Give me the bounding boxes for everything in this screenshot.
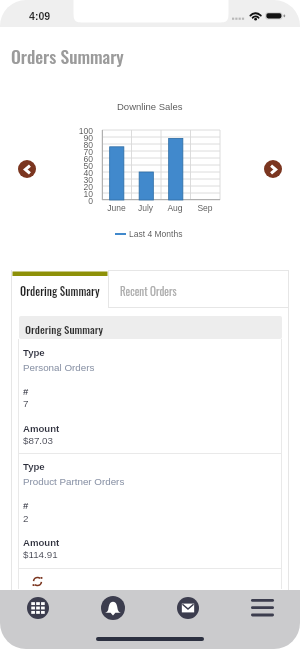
staticText: 50 <box>83 161 93 171</box>
staticText: Last 4 Months <box>129 229 183 238</box>
staticText: 80 <box>83 140 93 150</box>
staticText: Amount <box>23 537 60 548</box>
staticText: Type <box>23 347 45 358</box>
staticText: Amount <box>23 423 60 434</box>
button[interactable]: Menu <box>225 590 300 626</box>
staticText: Aug <box>160 203 190 212</box>
button[interactable]: Notifications <box>75 590 150 626</box>
staticText: Personal Orders <box>23 362 95 373</box>
staticText: 100 <box>78 126 93 136</box>
staticText: # <box>23 386 29 397</box>
staticText: Orders Summary <box>11 43 124 69</box>
staticText: Ordering Summary <box>20 283 100 299</box>
staticText: 20 <box>83 182 93 192</box>
staticText: 7 <box>23 398 29 409</box>
button[interactable]: Apps <box>0 590 75 626</box>
staticText: Type <box>23 461 45 472</box>
staticText: 2 <box>23 513 29 524</box>
staticText: 70 <box>83 147 93 157</box>
staticText: 40 <box>83 168 93 178</box>
button[interactable]: Recent Orders <box>109 270 289 308</box>
staticText: Ordering Summary <box>25 321 104 337</box>
staticText: # <box>23 500 29 511</box>
staticText: 60 <box>83 154 93 164</box>
staticText: July <box>131 203 160 212</box>
staticText: 90 <box>83 133 93 143</box>
staticText: $114.91 <box>23 549 58 560</box>
button[interactable]: Previous <box>18 160 36 178</box>
staticText: Downline Sales <box>117 101 183 112</box>
staticText: Product Partner Orders <box>23 476 125 487</box>
staticText: 4:09 <box>29 10 51 22</box>
staticText: 30 <box>83 175 93 185</box>
staticText: Sep <box>190 203 220 212</box>
staticText: $87.03 <box>23 435 53 446</box>
button[interactable]: Ordering Summary <box>12 270 108 308</box>
staticText: 0 <box>88 196 93 206</box>
staticText: June <box>102 203 131 212</box>
staticText: 10 <box>83 189 93 199</box>
button[interactable]: Next <box>264 160 282 178</box>
staticText: Recent Orders <box>120 283 177 299</box>
button[interactable]: Refresh <box>27 571 48 592</box>
button[interactable]: Messages <box>150 590 225 626</box>
